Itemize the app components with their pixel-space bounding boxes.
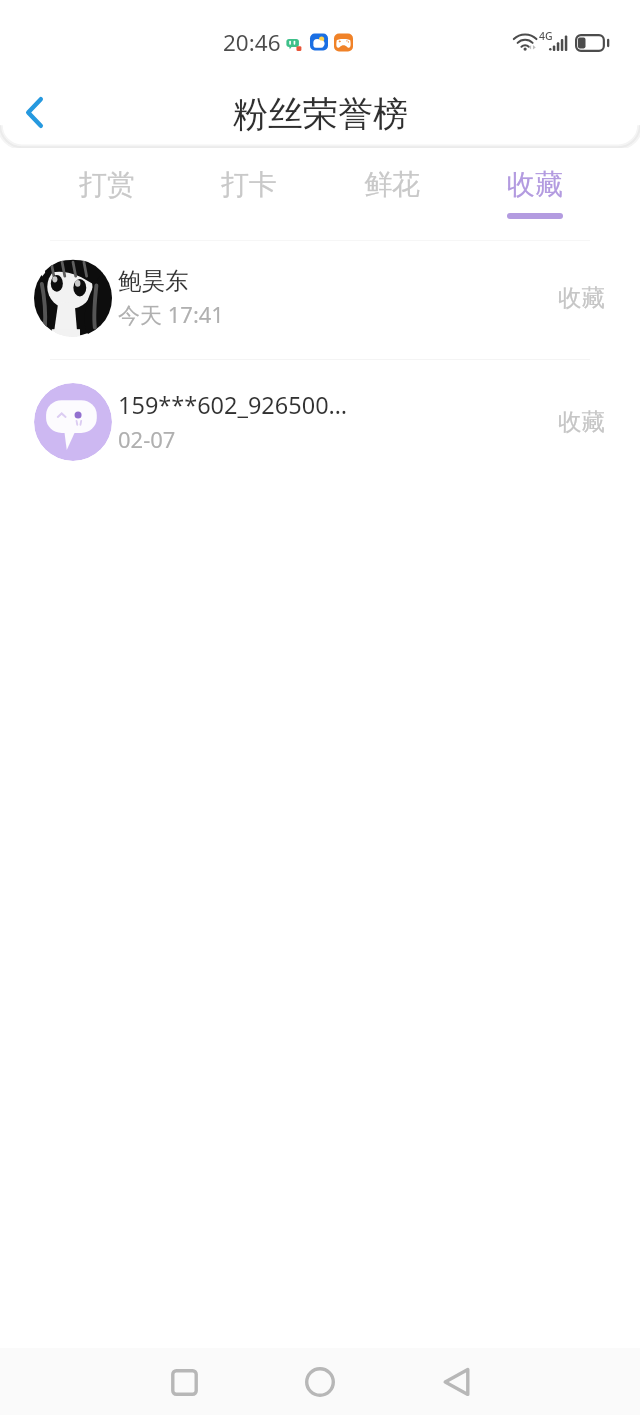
button[interactable]: Back	[6, 81, 62, 137]
button[interactable]: Recents	[153, 1351, 215, 1413]
staticText: 收藏	[558, 283, 605, 313]
button[interactable]: 收藏	[463, 148, 606, 240]
button[interactable]: 鲜花	[320, 148, 463, 240]
button[interactable]: 打卡	[178, 148, 320, 240]
button[interactable]: 159***602_926500…	[0, 360, 640, 484]
staticText: 粉丝荣誉榜	[233, 92, 408, 136]
staticText: 今天 17:41	[118, 299, 224, 329]
staticText: 02-07	[118, 424, 176, 454]
staticText: 4G	[539, 29, 553, 43]
staticText: 收藏	[507, 167, 563, 202]
button[interactable]: Home	[289, 1351, 351, 1413]
button[interactable]: 鲍昊东	[0, 236, 640, 360]
button[interactable]: 打赏	[36, 148, 178, 240]
staticText: 收藏	[558, 407, 605, 437]
staticText: 鲜花	[364, 167, 420, 202]
staticText: 打卡	[221, 167, 277, 202]
button[interactable]: Back	[425, 1351, 487, 1413]
staticText: 鲍昊东	[118, 266, 189, 296]
staticText: 159***602_926500…	[118, 389, 348, 421]
staticText: 20:46	[223, 27, 281, 58]
staticText: 打赏	[79, 167, 135, 202]
